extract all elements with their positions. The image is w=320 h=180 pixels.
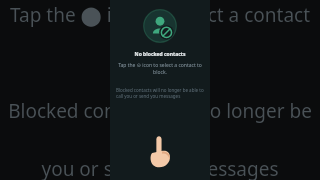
staticText: Tap the ⬤ icon to select a contact to xyxy=(6,2,314,54)
staticText: Blocked contacts will no longer be able … xyxy=(116,87,204,100)
staticText: Blocked contacts will no longer be able … xyxy=(6,98,314,150)
button[interactable]: Tap pointer xyxy=(147,134,173,168)
staticText: you or send you messages xyxy=(6,156,314,180)
other: No blocked contacts xyxy=(143,9,177,43)
staticText: Tap the ⊝ icon to select a contact to bl… xyxy=(118,62,202,76)
staticText: No blocked contacts xyxy=(110,51,210,58)
